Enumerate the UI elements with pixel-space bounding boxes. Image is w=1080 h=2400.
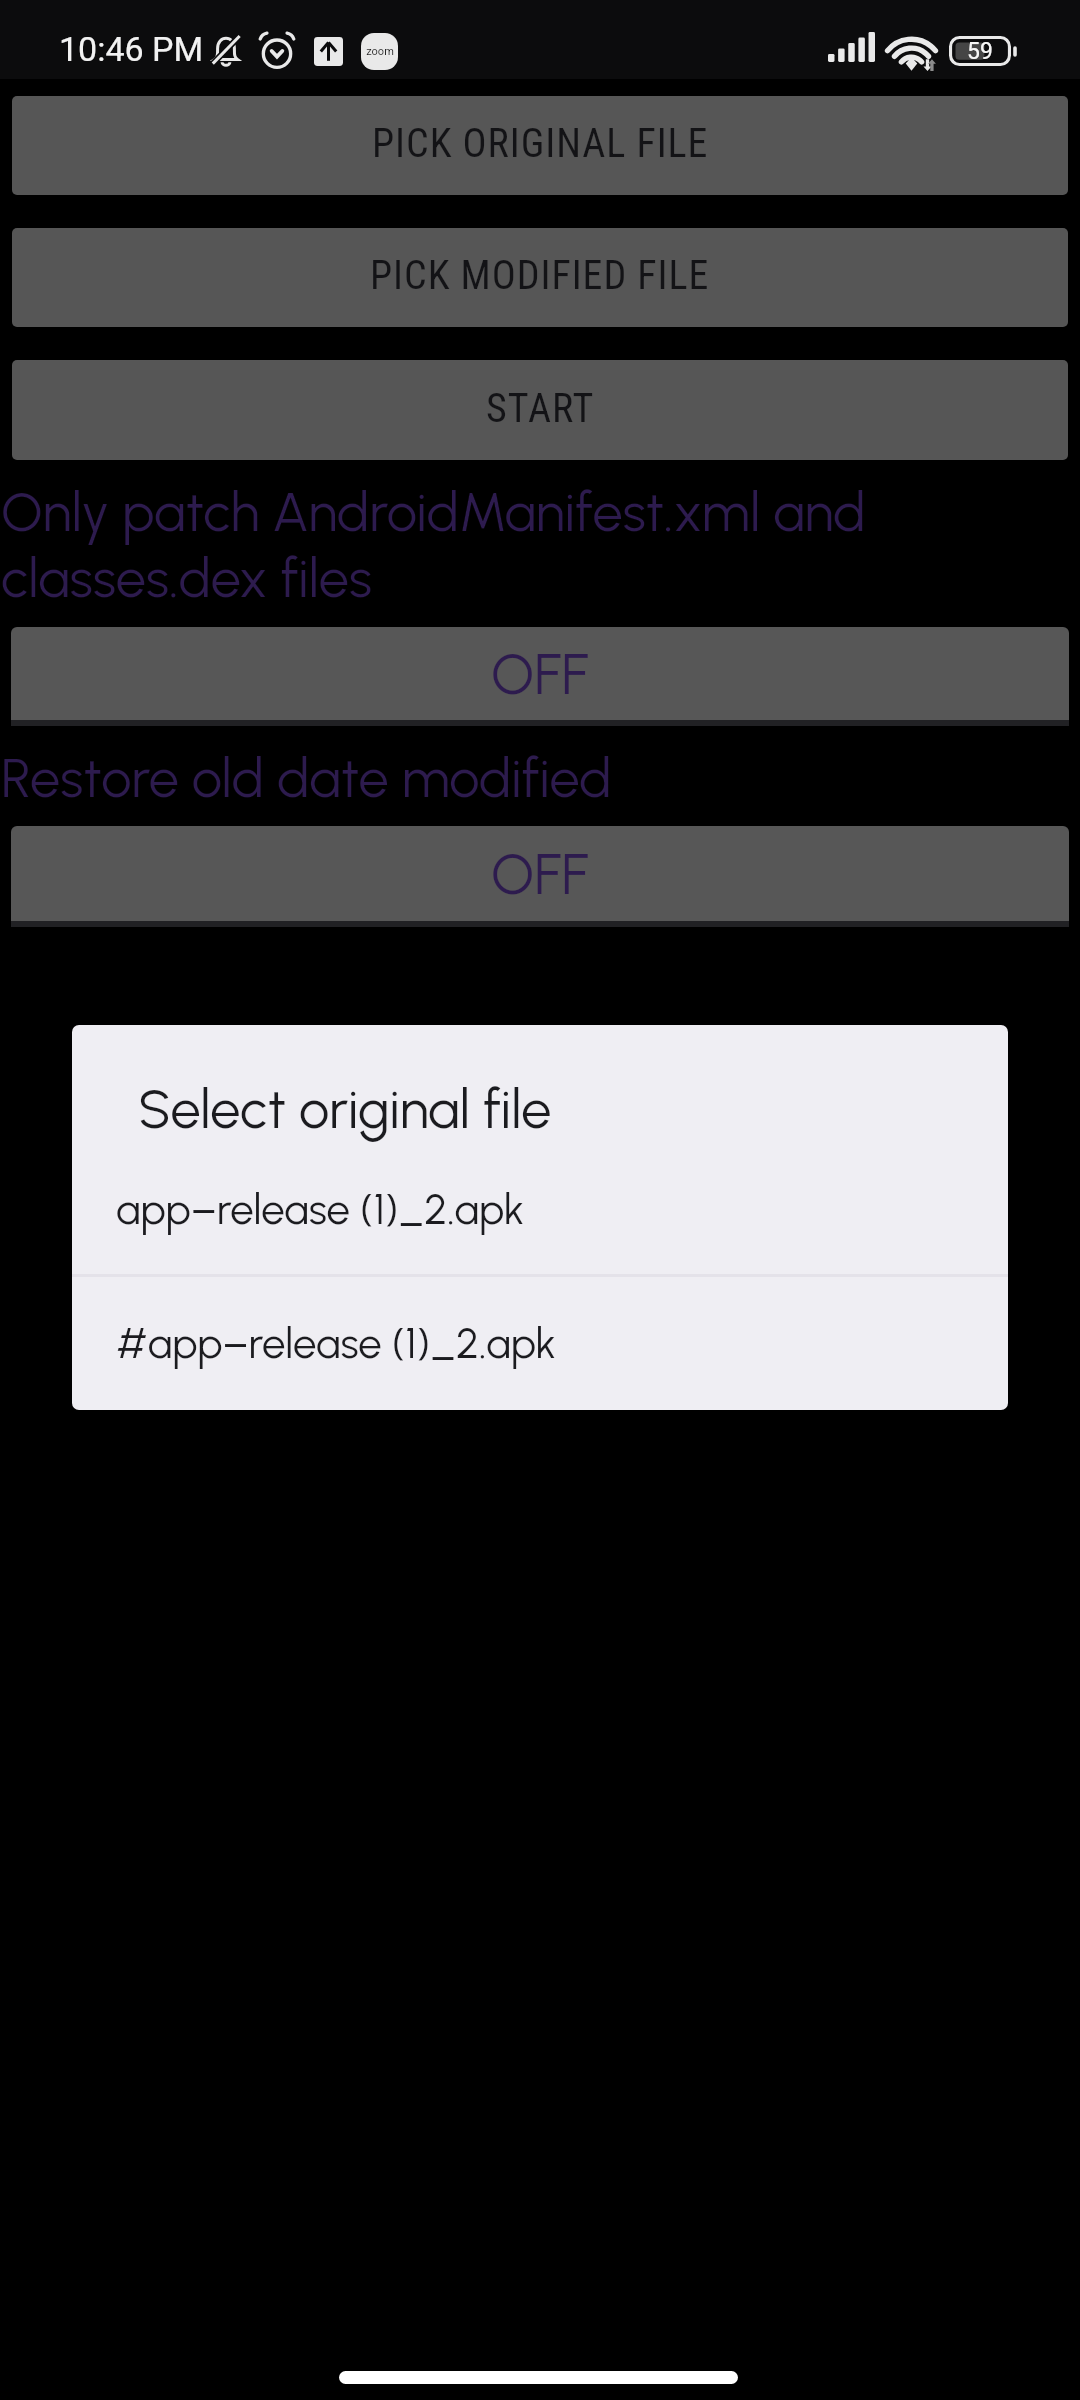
staticText: 10:46 PM [59,29,204,69]
staticText: PICK MODIFIED FILE [370,252,710,299]
button[interactable]: app–release (1)_2.apk [72,1171,1008,1273]
other: Silent mode [208,32,244,68]
staticText: Restore old date modified [1,746,612,811]
staticText: Select original file [138,1077,552,1142]
other: Wi-Fi [888,34,935,69]
staticText: OFF [491,841,589,908]
button[interactable]: PICK MODIFIED FILE [12,228,1068,327]
other: Mobile signal [828,32,875,62]
staticText: START [486,385,595,432]
other: Zoom [361,33,398,70]
staticText: #app–release (1)_2.apk [116,1318,557,1368]
button[interactable]: OFF [11,627,1069,726]
button[interactable]: #app–release (1)_2.apk [72,1275,1008,1410]
staticText: Only patch AndroidManifest.xml and class… [1,480,866,611]
staticText: OFF [491,641,589,708]
other: Alarm [257,31,297,71]
other: Battery 59 percent [949,36,1018,66]
other: Uploading [314,37,343,66]
button[interactable]: OFF [11,826,1069,927]
staticText: zoom [366,45,394,58]
button[interactable]: PICK ORIGINAL FILE [12,96,1068,195]
staticText: PICK ORIGINAL FILE [372,120,709,167]
staticText: 59 [967,38,993,65]
button[interactable]: START [12,360,1068,460]
staticText: app–release (1)_2.apk [116,1184,525,1234]
